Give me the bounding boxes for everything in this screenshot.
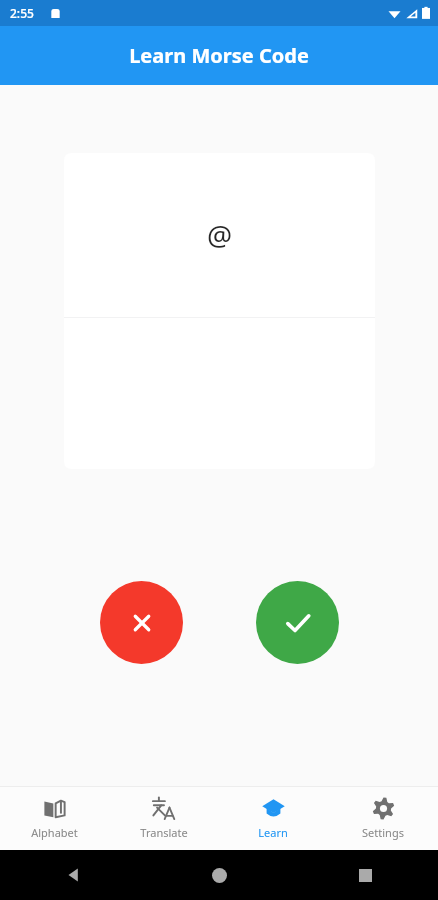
staticText: Alphabet (31, 825, 78, 840)
staticText: 2:55 (10, 5, 34, 21)
button[interactable]: Incorrect (100, 581, 183, 664)
button[interactable]: @ (64, 153, 375, 469)
staticText: Translate (140, 825, 188, 840)
staticText: @ (207, 216, 233, 254)
button[interactable]: Back (53, 855, 93, 895)
button[interactable]: Alphabet (0, 786, 109, 850)
staticText: Learn (258, 825, 288, 840)
button[interactable]: Recents (345, 855, 385, 895)
staticText: Learn Morse Code (129, 42, 309, 69)
button[interactable]: Translate (109, 786, 218, 850)
button[interactable]: Correct (256, 581, 339, 664)
button[interactable]: Learn (218, 786, 328, 850)
button[interactable]: Settings (328, 786, 438, 850)
staticText: Settings (362, 825, 404, 840)
button[interactable]: Home (199, 855, 239, 895)
